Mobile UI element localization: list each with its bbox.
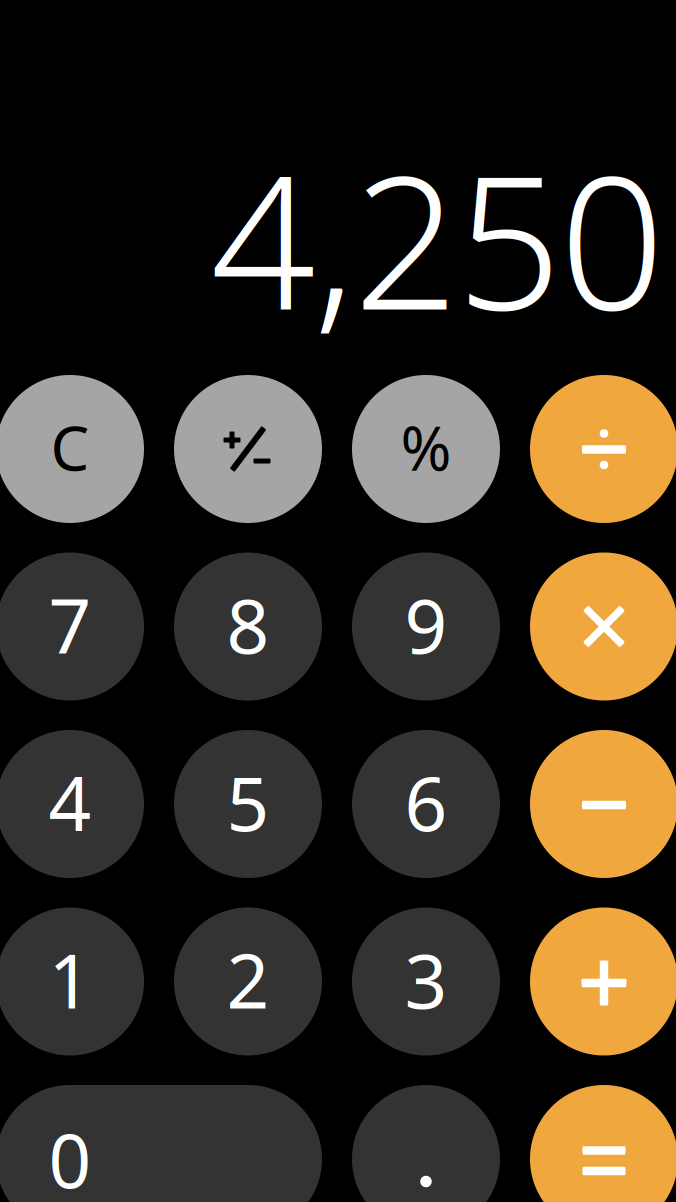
button[interactable]: 2 — [174, 907, 322, 1055]
button[interactable]: % — [352, 375, 500, 523]
staticText: 8 — [226, 575, 269, 674]
button[interactable]: 9 — [352, 552, 500, 700]
button[interactable]: 7 — [0, 552, 144, 700]
button[interactable]: Multiply — [530, 552, 676, 700]
staticText: 2 — [226, 930, 269, 1029]
staticText: 1 — [48, 930, 91, 1029]
button[interactable]: 6 — [352, 730, 500, 878]
button[interactable]: 0 — [0, 1085, 322, 1202]
button[interactable]: C — [0, 375, 144, 523]
staticText: 0 — [48, 1109, 91, 1202]
staticText: 6 — [404, 752, 447, 852]
button[interactable]: 3 — [352, 907, 500, 1055]
button[interactable]: Subtract — [530, 730, 676, 878]
button[interactable]: Equals — [530, 1085, 676, 1202]
button[interactable]: 1 — [0, 907, 144, 1055]
staticText: 3 — [404, 930, 447, 1029]
staticText: % — [400, 406, 451, 488]
staticText: 5 — [226, 752, 269, 852]
button[interactable]: Add — [530, 907, 676, 1055]
button[interactable]: Divide — [530, 375, 676, 523]
button[interactable]: Plus minus — [174, 375, 322, 523]
button[interactable]: 5 — [174, 730, 322, 878]
staticText: 4 — [48, 752, 91, 852]
staticText: 4,250 — [210, 116, 664, 360]
button[interactable]: 4 — [0, 730, 144, 878]
staticText: 7 — [48, 575, 91, 674]
staticText: C — [50, 406, 89, 488]
button[interactable]: 8 — [174, 552, 322, 700]
staticText: 9 — [404, 575, 447, 674]
button[interactable]: Decimal point — [352, 1085, 500, 1202]
